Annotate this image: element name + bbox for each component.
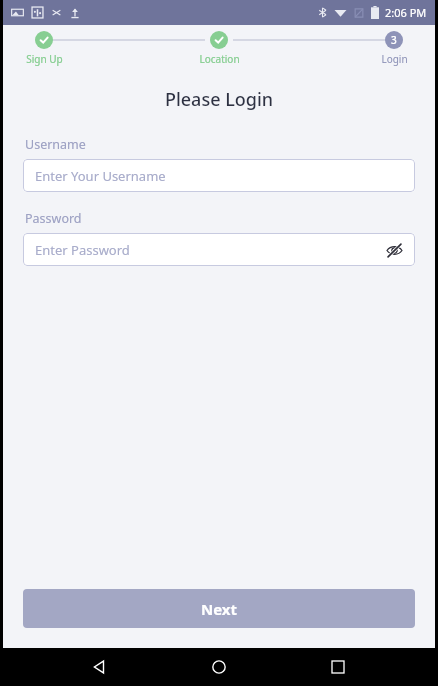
staticText: Sign Up [26,52,63,66]
button[interactable]: Enter Password [23,233,415,266]
button[interactable]: 3 [365,31,423,66]
staticText: 2:06 PM [385,5,427,20]
staticText: Location [199,52,240,66]
button[interactable]: Enter Your Username [23,159,415,192]
staticText: 3 [391,33,397,47]
button[interactable]: Next [23,589,415,628]
button[interactable]: Sign Up [15,31,73,66]
staticText: Next [201,599,238,619]
button[interactable]: Back [78,648,122,686]
staticText: Login [381,52,408,66]
staticText: Username [25,136,86,153]
button[interactable]: Show password [383,239,405,261]
staticText: Please Login [3,87,435,112]
button[interactable]: Recent apps [316,648,360,686]
button[interactable]: Home [197,648,241,686]
staticText: Enter Password [35,241,130,259]
staticText: Password [25,210,82,227]
staticText: Enter Your Username [35,167,166,185]
button[interactable]: Location [190,31,248,66]
